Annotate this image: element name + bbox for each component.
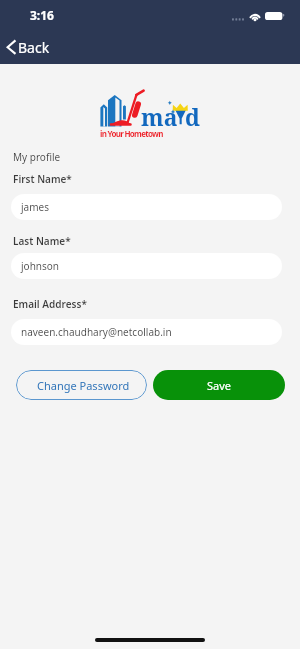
staticText: d bbox=[185, 101, 200, 132]
staticText: ma bbox=[141, 101, 178, 132]
button[interactable]: james bbox=[11, 194, 282, 220]
button[interactable]: Change Password bbox=[16, 370, 147, 400]
button[interactable]: Save bbox=[153, 370, 285, 400]
staticText: Save bbox=[207, 378, 232, 393]
button[interactable]: johnson bbox=[11, 253, 282, 279]
button[interactable]: naveen.chaudhary@netcollab.in bbox=[11, 319, 282, 345]
staticText: naveen.chaudhary@netcollab.in bbox=[21, 325, 172, 339]
staticText: james bbox=[21, 200, 49, 214]
staticText: Last Name* bbox=[13, 234, 71, 248]
staticText: First Name* bbox=[13, 172, 72, 186]
staticText: Change Password bbox=[37, 378, 130, 393]
staticText: Email Address* bbox=[13, 297, 87, 311]
staticText: My profile bbox=[13, 150, 61, 164]
button[interactable]: Back bbox=[3, 36, 52, 59]
staticText: Back bbox=[18, 38, 50, 57]
staticText: 3:16 bbox=[30, 7, 54, 23]
staticText: johnson bbox=[21, 259, 60, 273]
staticText: in Your Hometown bbox=[100, 128, 163, 139]
